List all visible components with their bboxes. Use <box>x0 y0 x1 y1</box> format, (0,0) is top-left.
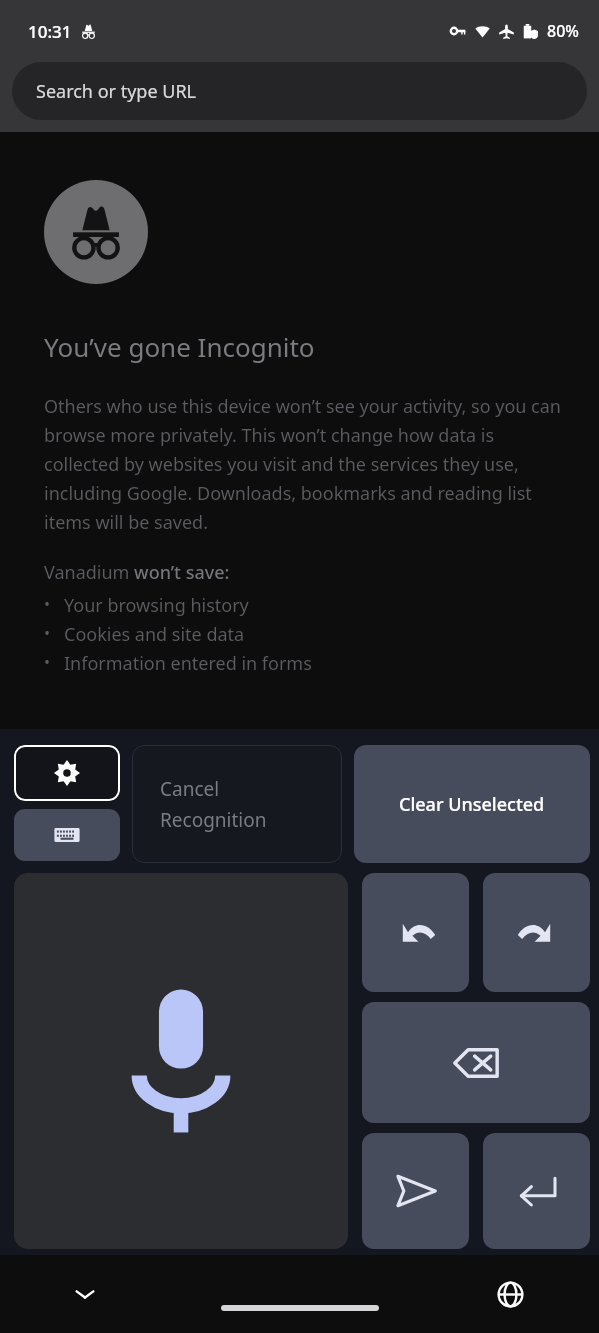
button[interactable]: Redo <box>483 873 590 992</box>
button[interactable]: Send <box>362 1133 469 1249</box>
button[interactable]: Search or type URL <box>12 62 587 120</box>
staticText: You’ve gone Incognito <box>44 329 315 364</box>
staticText: Cookies and site data <box>64 622 245 647</box>
button[interactable]: Microphone <box>14 873 348 1249</box>
button[interactable]: Cancel Recognition <box>132 745 342 863</box>
staticText: Cancel Recognition <box>160 776 267 832</box>
button[interactable]: Language <box>487 1271 533 1317</box>
button[interactable]: Hide <box>62 1271 108 1317</box>
button[interactable]: Keyboard <box>14 809 120 861</box>
button[interactable]: Backspace <box>362 1002 590 1123</box>
staticText: • <box>44 622 51 644</box>
staticText: • <box>44 651 51 673</box>
staticText: Search or type URL <box>36 79 197 104</box>
staticText: Your browsing history <box>64 593 249 618</box>
staticText: Information entered in forms <box>64 651 312 676</box>
staticText: 10:31 <box>28 20 72 43</box>
button[interactable]: Clear Unselected <box>354 745 590 863</box>
staticText: Vanadium won’t save: <box>44 560 230 585</box>
button[interactable]: Settings <box>14 745 120 801</box>
staticText: • <box>44 593 51 615</box>
staticText: 80% <box>547 20 579 42</box>
staticText: Others who use this device won’t see you… <box>44 394 571 534</box>
button[interactable]: Enter <box>483 1133 590 1249</box>
button[interactable]: Undo <box>362 873 469 992</box>
staticText: Clear Unselected <box>399 792 545 817</box>
